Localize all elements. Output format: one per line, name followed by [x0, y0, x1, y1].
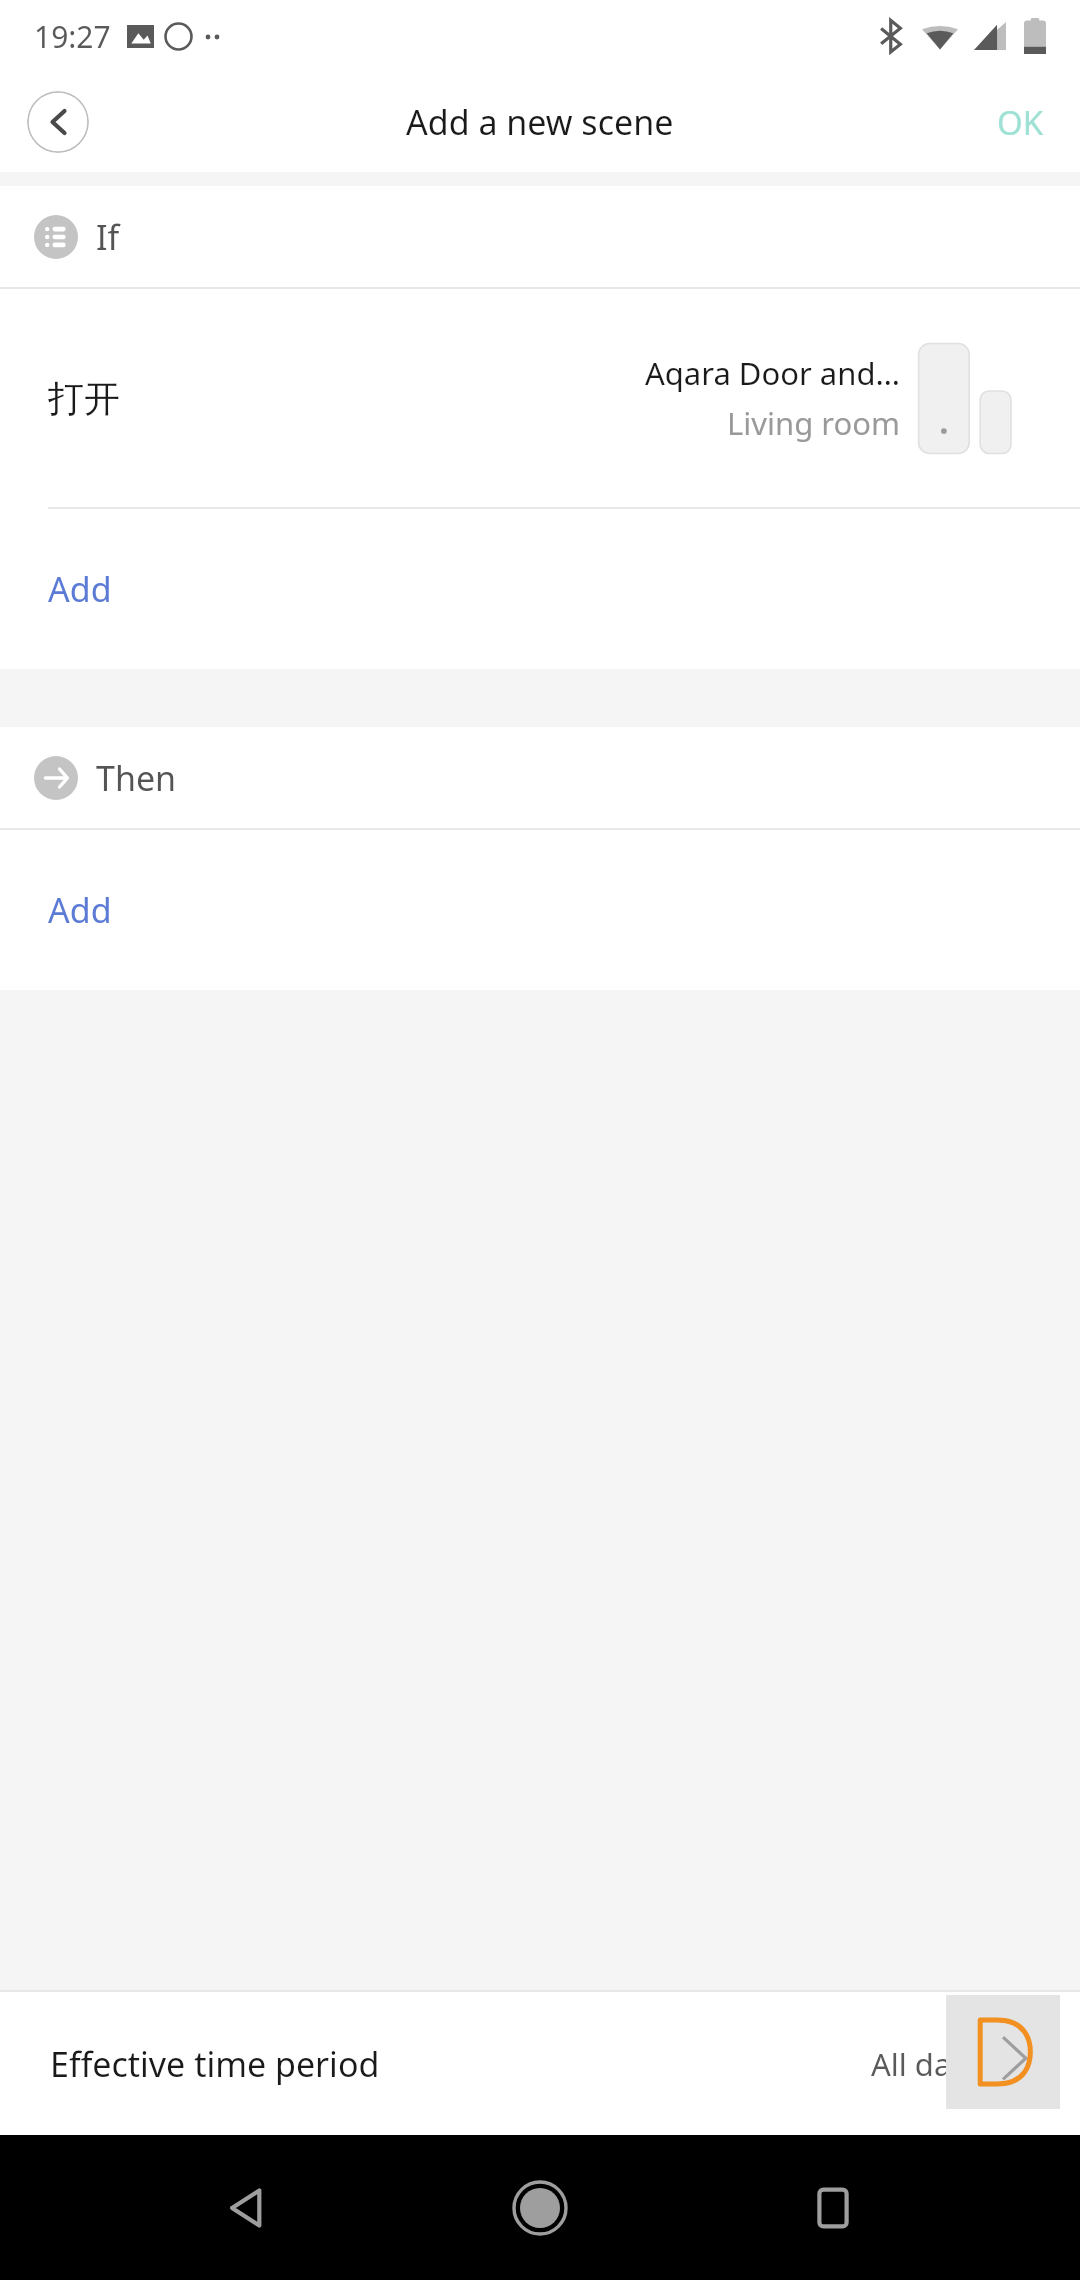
staticText: OK [997, 100, 1044, 145]
staticText: All day [871, 2043, 968, 2085]
button[interactable]: Add [0, 830, 1080, 990]
staticText: 19:27 [34, 16, 111, 57]
staticText: Effective time period [50, 2041, 380, 2087]
button[interactable]: Home [504, 2172, 576, 2244]
staticText: Add [48, 887, 112, 933]
button[interactable]: Effective time period [0, 1992, 1080, 2135]
staticText: Aqara Door and… [644, 352, 900, 394]
button[interactable]: OK [979, 88, 1062, 157]
staticText: 打开 [48, 376, 120, 421]
button[interactable]: Back [215, 2176, 279, 2240]
button[interactable]: Back [27, 91, 89, 153]
staticText: Add [48, 566, 112, 612]
button[interactable]: 打开 [0, 289, 1080, 507]
staticText: Living room [727, 402, 900, 444]
button[interactable]: Recent apps [801, 2176, 865, 2240]
button[interactable]: Then [0, 727, 1080, 828]
staticText: Add a new scene [406, 99, 674, 145]
staticText: Then [96, 755, 177, 801]
button[interactable]: If [0, 186, 1080, 287]
staticText: If [96, 214, 120, 260]
button[interactable]: Add [0, 509, 1080, 669]
